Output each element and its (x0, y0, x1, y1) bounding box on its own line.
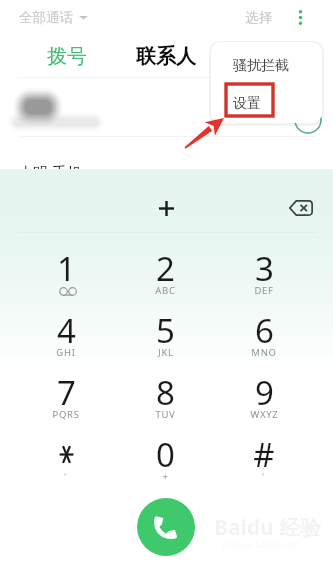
staticText: 小明 手机 (18, 162, 82, 169)
button[interactable]: Key 1 (21, 246, 111, 304)
button[interactable]: Backspace (286, 192, 314, 224)
staticText: 5 (156, 308, 175, 353)
staticText: WXYZ (250, 408, 279, 421)
staticText: DEF (254, 284, 274, 297)
staticText: + (162, 470, 169, 483)
button[interactable]: Plus (148, 190, 184, 226)
button[interactable]: Key 9 (219, 370, 309, 428)
button[interactable]: Key # (219, 432, 309, 490)
button[interactable]: 拨号 (22, 40, 112, 72)
staticText: GHI (56, 346, 76, 359)
staticText: 拨号 (47, 44, 87, 69)
staticText: 设置 (233, 95, 261, 113)
button[interactable]: Key 6 (219, 308, 309, 366)
staticText: 3 (255, 246, 274, 291)
button[interactable]: Key 2 (120, 246, 210, 304)
button[interactable]: Call (137, 498, 195, 556)
button[interactable]: Key * (21, 432, 111, 490)
staticText: 9 (255, 370, 274, 415)
staticText: 2 (156, 246, 175, 291)
staticText: 全部通话 (19, 9, 73, 26)
button[interactable]: 骚扰拦截 (211, 45, 322, 87)
button[interactable]: Key 3 (219, 246, 309, 304)
staticText: , (64, 464, 67, 478)
staticText: 7 (57, 370, 76, 415)
staticText: 4 (57, 308, 76, 353)
button[interactable]: Key 7 (21, 370, 111, 428)
staticText: Baidu 经验 (214, 513, 322, 542)
button[interactable]: More options (289, 5, 311, 29)
staticText: ; (262, 463, 265, 477)
staticText: MNO (251, 346, 277, 359)
staticText: 骚扰拦截 (233, 57, 289, 75)
staticText: 8 (156, 370, 175, 415)
button[interactable]: 小明 手机 (0, 150, 333, 169)
button[interactable]: Key 0 (120, 432, 210, 490)
button[interactable]: Key 4 (21, 308, 111, 366)
staticText: # (253, 432, 275, 477)
staticText: 6 (255, 308, 274, 353)
button[interactable]: Key 5 (120, 308, 210, 366)
button[interactable]: Key 8 (120, 370, 210, 428)
staticText: TUV (155, 408, 176, 421)
button[interactable]: 选择 (245, 6, 272, 28)
staticText: JKL (158, 346, 174, 359)
staticText: ABC (155, 284, 176, 297)
button[interactable]: 设置 (211, 84, 322, 123)
staticText: 联系人 (136, 44, 196, 69)
button[interactable]: 联系人 (121, 40, 211, 72)
staticText: 选择 (245, 9, 272, 26)
staticText: 0 (156, 432, 175, 477)
staticText: PQRS (52, 408, 80, 421)
staticText: 1 (57, 246, 76, 291)
button[interactable]: 全部通话 (19, 6, 88, 28)
